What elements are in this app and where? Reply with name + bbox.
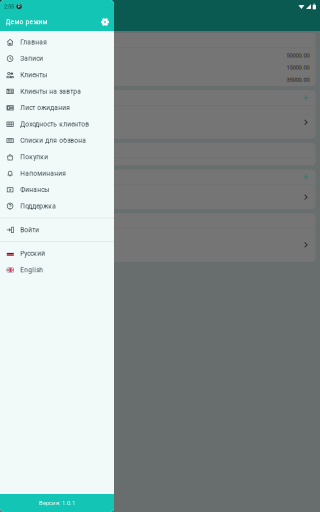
staticText: Русский (20, 250, 45, 257)
button[interactable]: Напоминания (0, 165, 114, 182)
button[interactable]: Поддержка (0, 198, 114, 214)
staticText: 15000.00 (286, 64, 309, 71)
staticText: Поддержка (20, 202, 56, 210)
button[interactable]: English (0, 262, 114, 278)
staticText: Главная (20, 38, 47, 46)
staticText: Войти (20, 226, 39, 234)
staticText: P (18, 4, 21, 9)
staticText: Списки для обзвона (20, 137, 86, 144)
staticText: Демо режим (6, 18, 48, 26)
button[interactable]: Доходность клиентов (0, 116, 114, 132)
button[interactable]: Финансы (0, 182, 114, 198)
staticText: Напоминания (20, 170, 66, 177)
button[interactable]: Покупки (0, 149, 114, 165)
button[interactable]: Settings (97, 14, 113, 30)
staticText: 2:55 (4, 3, 14, 10)
staticText: Клиенты на завтра (20, 88, 81, 95)
button[interactable]: Записи (0, 50, 114, 67)
button[interactable]: Клиенты на завтра (0, 83, 114, 100)
button[interactable]: Русский (0, 245, 114, 262)
staticText: Финансы (20, 186, 49, 194)
button[interactable]: Лист ожидания (0, 100, 114, 116)
staticText: Версия: 1.0.1 (39, 499, 75, 507)
staticText: Клиенты (20, 71, 47, 79)
button[interactable]: Главная (0, 34, 114, 50)
staticText: Записи (20, 55, 43, 62)
staticText: Лист ожидания (20, 104, 70, 112)
staticText: English (20, 266, 43, 274)
staticText: Покупки (20, 153, 48, 161)
staticText: 50000.00 (286, 52, 309, 59)
button[interactable]: Списки для обзвона (0, 132, 114, 149)
button[interactable]: Клиенты (0, 67, 114, 83)
staticText: 35000.00 (286, 76, 309, 83)
staticText: Доходность клиентов (20, 120, 89, 128)
button[interactable]: Войти (0, 222, 114, 238)
